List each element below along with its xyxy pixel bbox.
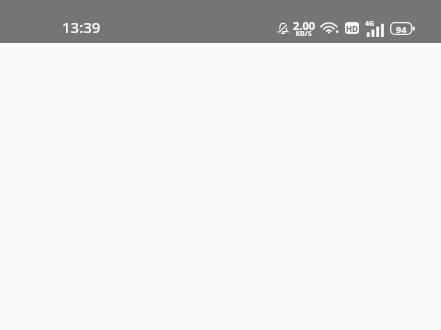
staticText: 4G bbox=[365, 19, 375, 29]
other: Notifications silenced bbox=[277, 22, 289, 35]
other: Wi-Fi connected bbox=[321, 21, 339, 35]
other: HD voice bbox=[345, 22, 359, 34]
other: 4G mobile signal bbox=[365, 21, 384, 37]
staticText: 13:39 bbox=[62, 17, 101, 37]
staticText: KB/S bbox=[295, 29, 312, 39]
staticText: 2.00 bbox=[293, 18, 315, 33]
other: Battery 94 percent bbox=[390, 22, 415, 35]
staticText: 94 bbox=[396, 23, 407, 35]
staticText: HD bbox=[346, 23, 358, 34]
